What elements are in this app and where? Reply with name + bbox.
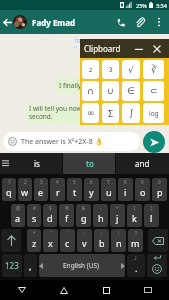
staticText: .	[135, 262, 138, 274]
button[interactable]: ³	[102, 60, 119, 79]
button[interactable]: to	[63, 153, 116, 174]
button[interactable]: ∩	[82, 81, 99, 101]
button[interactable]: Call	[113, 10, 130, 34]
button[interactable]: Back	[0, 280, 43, 300]
button[interactable]: Attach	[131, 10, 148, 34]
button[interactable]: log	[143, 103, 164, 123]
button[interactable]: ∛	[143, 60, 164, 79]
staticText: s	[32, 212, 37, 224]
button[interactable]: ;	[94, 229, 109, 252]
button[interactable]: 8	[118, 178, 133, 201]
button[interactable]: 9	[135, 178, 150, 201]
button[interactable]: The answer is X²+2X-8 👌	[8, 132, 137, 151]
button[interactable]: ∈	[122, 81, 140, 101]
button[interactable]: &	[76, 204, 91, 227]
button[interactable]: 0	[152, 178, 167, 201]
button[interactable]: ∪	[102, 81, 119, 101]
staticText: n	[116, 237, 122, 249]
staticText: p	[157, 186, 163, 198]
button[interactable]: ²	[82, 60, 99, 79]
staticText: u	[106, 186, 112, 198]
staticText: ²	[89, 66, 93, 78]
button[interactable]: Emoji	[147, 254, 167, 277]
button[interactable]: 2	[18, 178, 32, 201]
button[interactable]: -	[93, 204, 108, 227]
staticText: t	[73, 186, 77, 198]
staticText: c	[65, 237, 70, 249]
button[interactable]: is	[10, 153, 63, 174]
button[interactable]: ∞	[82, 103, 99, 123]
staticText: 6	[90, 179, 93, 185]
staticText: )	[151, 205, 153, 211]
button[interactable]: )	[144, 204, 159, 227]
staticText: ∩	[87, 86, 94, 96]
staticText: d	[47, 212, 53, 224]
staticText: 1	[8, 179, 11, 185]
button[interactable]: Recents	[85, 280, 127, 300]
button[interactable]: %	[59, 204, 74, 227]
button[interactable]: ∫	[122, 103, 140, 123]
staticText: I finally solved it	[59, 81, 109, 90]
button[interactable]: "	[43, 229, 58, 252]
button[interactable]: 1	[2, 178, 16, 201]
button[interactable]: ?	[128, 229, 143, 252]
button[interactable]: More options	[152, 10, 166, 34]
button[interactable]: @	[11, 204, 25, 227]
staticText: log	[149, 109, 159, 118]
button[interactable]: +	[110, 204, 125, 227]
staticText: ?	[135, 230, 137, 236]
button[interactable]: Keyboard	[127, 280, 169, 300]
staticText: #	[33, 205, 36, 211]
button[interactable]: ⊂	[143, 81, 164, 101]
staticText: x	[48, 237, 53, 249]
staticText: v	[82, 237, 87, 249]
button[interactable]: Space	[39, 254, 125, 277]
button[interactable]: Backspace	[148, 229, 168, 252]
button[interactable]: :	[77, 229, 92, 252]
button[interactable]: *	[27, 229, 41, 252]
button[interactable]: Menu	[0, 153, 10, 174]
button[interactable]: 5	[67, 178, 82, 201]
staticText: @	[16, 205, 21, 211]
staticText: English (US)	[63, 261, 100, 270]
staticText: !	[118, 230, 120, 236]
staticText: y	[89, 186, 94, 198]
staticText: l	[150, 212, 153, 224]
button[interactable]: and	[116, 153, 169, 174]
staticText: b	[99, 237, 105, 249]
staticText: h	[98, 212, 104, 224]
button[interactable]: 4	[50, 178, 65, 201]
staticText: ⊂	[150, 86, 158, 96]
staticText: g	[81, 212, 87, 224]
button[interactable]: $	[43, 204, 57, 227]
staticText: ♪	[134, 255, 138, 261]
staticText: '	[67, 230, 69, 236]
button[interactable]: #	[27, 204, 41, 227]
staticText: :	[84, 230, 86, 236]
button[interactable]: √	[122, 60, 140, 79]
staticText: $	[49, 205, 52, 211]
button[interactable]: ♪	[127, 254, 145, 277]
button[interactable]: Home	[43, 280, 85, 300]
staticText: ∞	[87, 108, 95, 118]
staticText: 4	[56, 179, 59, 185]
button[interactable]: Shift	[1, 229, 21, 252]
button[interactable]: (	[127, 204, 142, 227]
staticText: ³	[109, 66, 113, 78]
button[interactable]: 123	[2, 254, 22, 277]
staticText: m	[131, 237, 140, 249]
button[interactable]: Σ	[102, 103, 119, 123]
button[interactable]: Minimize	[131, 39, 147, 58]
button[interactable]: '	[60, 229, 75, 252]
button[interactable]: Close	[149, 39, 165, 58]
button[interactable]: Send	[143, 131, 165, 153]
button[interactable]: Back	[1, 16, 13, 28]
button[interactable]: 7	[101, 178, 116, 201]
button[interactable]: 6	[84, 178, 99, 201]
button[interactable]: ,	[24, 254, 37, 277]
staticText: 25%	[136, 2, 147, 9]
button[interactable]: 3	[34, 178, 48, 201]
button[interactable]: !	[111, 229, 126, 252]
staticText: to	[86, 158, 94, 169]
staticText: *	[33, 230, 36, 236]
